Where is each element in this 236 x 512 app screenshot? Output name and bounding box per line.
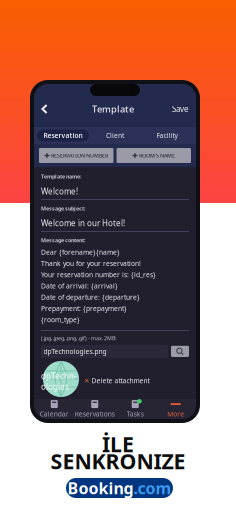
staticText: dpTechnologies [41, 371, 77, 392]
staticText: Delete attachment [91, 376, 149, 385]
staticText: dpTechnologies.png [43, 347, 106, 356]
staticText: Calendar [40, 410, 69, 418]
staticText: Message subject: [41, 205, 85, 212]
staticText: Reservation [43, 131, 82, 140]
staticText: RESERVATION NUMBER [51, 152, 108, 159]
staticText: Welcome! [41, 186, 78, 197]
staticText: Reservations [75, 410, 115, 418]
staticText: (.jpg, .jpeg, .png, .gif) - max. 2MB: [41, 335, 116, 342]
staticText: Date of arrival: {arrival} [41, 281, 118, 290]
staticText: Save [172, 104, 189, 114]
button[interactable]: Reservations [74, 398, 115, 420]
button[interactable]: RESERVATION NUMBER [39, 148, 113, 163]
staticText: Dear {forename}{name} [41, 248, 120, 257]
staticText: Date of departure: {departure} [41, 293, 140, 302]
staticText: Template [92, 103, 134, 115]
button[interactable]: Calendar [34, 398, 74, 420]
button[interactable]: Browse [171, 346, 189, 357]
staticText: Prepayment: {prepayment} [41, 304, 127, 313]
staticText: Your reservation number is: {id_res} [41, 270, 156, 279]
staticText: İLE [102, 430, 134, 458]
staticText: Facility [156, 131, 177, 140]
staticText: {room_type} [41, 315, 80, 324]
button[interactable]: Tasks [115, 398, 155, 420]
button[interactable]: ✕ [84, 376, 149, 397]
staticText: .com [133, 477, 171, 499]
button[interactable]: Client [89, 129, 141, 141]
staticText: Booking [67, 477, 133, 499]
staticText: More [167, 410, 184, 418]
staticText: Welcome in our Hotel! [41, 218, 125, 228]
staticText: ✕ [84, 377, 90, 384]
button[interactable]: Save [172, 101, 196, 117]
staticText: Thank you for your reservation! [41, 259, 141, 268]
staticText: Template name: [41, 173, 81, 180]
button[interactable]: Reservation [37, 129, 89, 141]
staticText: Tasks [127, 410, 144, 418]
button[interactable]: More [155, 398, 196, 420]
staticText: Message content: [41, 237, 85, 244]
button[interactable]: Facility [141, 129, 193, 141]
staticText: SENKRONIZE [50, 447, 185, 475]
button[interactable]: ROOM'S NAME [116, 148, 191, 163]
staticText: Client [106, 131, 124, 140]
button[interactable]: Back [34, 101, 54, 117]
staticText: ROOM'S NAME [139, 152, 175, 159]
